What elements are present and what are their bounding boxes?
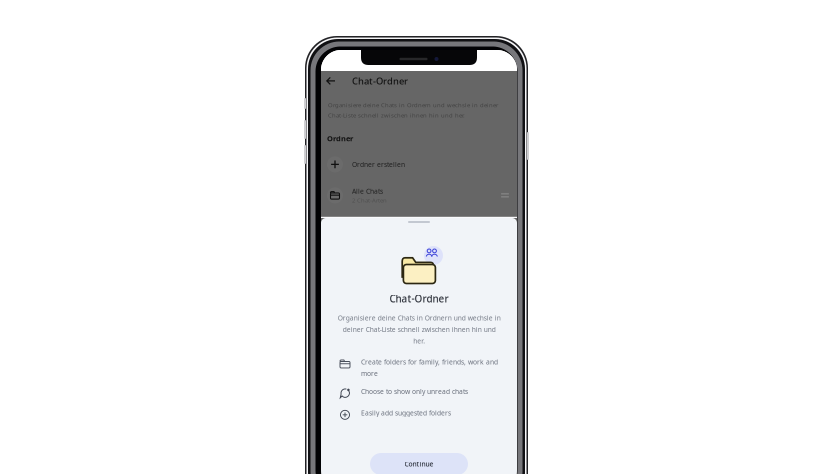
button[interactable]: Ordner erstellen (321, 152, 517, 176)
staticText: Organisiere deine Chats in Ordnern und w… (328, 101, 498, 109)
staticText: Easily add suggested folders (361, 408, 451, 417)
staticText: Create folders for family, friends, work… (361, 357, 498, 378)
staticText: Chat-Liste schnell zwischen ihnen hin un… (328, 111, 465, 119)
staticText: Alle Chats (352, 187, 383, 196)
staticText: Ordner erstellen (352, 160, 405, 169)
button[interactable]: Chat-Ordner (321, 71, 517, 91)
staticText: 2 Chat-Arten (352, 196, 387, 204)
staticText: Chat-Ordner (352, 75, 408, 87)
staticText: Choose to show only unread chats (361, 387, 468, 396)
button[interactable]: Continue (370, 453, 468, 474)
staticText: Ordner (327, 133, 353, 143)
staticText: Organisiere deine Chats in Ordnern und w… (337, 313, 500, 345)
staticText: Continue (404, 459, 433, 469)
staticText: Chat-Ordner (389, 292, 448, 305)
button[interactable]: Alle Chats (321, 182, 517, 208)
